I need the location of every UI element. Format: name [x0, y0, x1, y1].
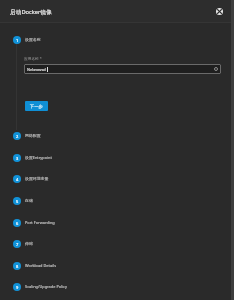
staticText: Nebrowsd [27, 67, 46, 72]
staticText: 设置名称 [25, 37, 41, 42]
button[interactable]: Nebrowsd [27, 64, 218, 74]
button[interactable]: 2 [0, 125, 234, 146]
staticText: 网络配置 [25, 133, 41, 138]
button[interactable]: 1 [0, 29, 234, 50]
staticText: 6 [16, 221, 19, 226]
staticText: 设置环境变量 [25, 176, 49, 181]
button[interactable]: 8 [0, 255, 234, 276]
staticText: 5 [16, 199, 19, 204]
button[interactable]: 6 [0, 212, 234, 233]
staticText: 伸缩 [25, 241, 33, 246]
button[interactable]: 9 [0, 276, 234, 297]
staticText: 7 [16, 242, 19, 247]
button[interactable]: Close [216, 8, 223, 15]
staticText: 1 [16, 38, 19, 43]
staticText: Scaling/Upgrade Policy [25, 284, 67, 289]
staticText: 存储 [25, 198, 33, 203]
staticText: 下一步 [30, 104, 43, 109]
button[interactable]: 5 [0, 190, 234, 211]
staticText: 9 [16, 285, 19, 290]
staticText: 8 [16, 264, 19, 269]
staticText: 3 [16, 156, 19, 161]
staticText: 设置Entrypoint [25, 155, 52, 160]
staticText: 启动Docker镜像 [10, 8, 52, 16]
button[interactable]: 3 [0, 147, 234, 168]
staticText: Workload Details [25, 263, 57, 268]
button[interactable]: 4 [0, 168, 234, 189]
button[interactable]: 7 [0, 233, 234, 254]
staticText: 4 [16, 177, 19, 182]
staticText: 2 [16, 134, 19, 139]
button[interactable]: 下一步 [25, 101, 48, 111]
staticText: Port Forwarding [25, 220, 55, 225]
staticText: 应用名称 * [24, 56, 42, 61]
